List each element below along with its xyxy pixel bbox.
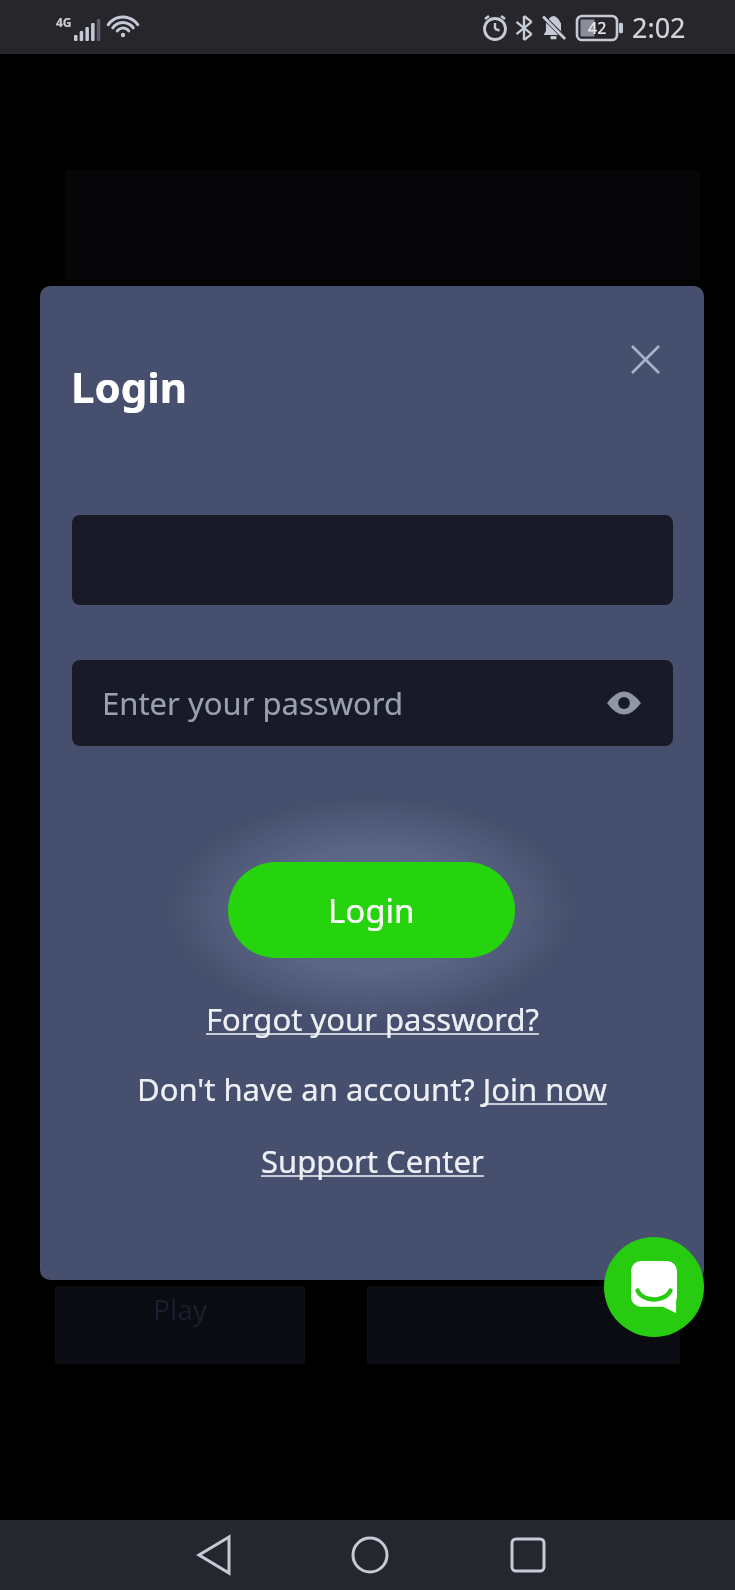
button[interactable] <box>184 1525 244 1585</box>
button[interactable] <box>498 1525 558 1585</box>
button[interactable]: Forgot your password? <box>206 998 539 1040</box>
button[interactable] <box>604 1237 704 1337</box>
staticText: Login <box>71 358 188 415</box>
staticText: Enter your password <box>102 682 404 724</box>
staticText: Login <box>328 888 415 933</box>
button[interactable] <box>340 1525 400 1585</box>
button[interactable]: Don't have an account? Join now <box>137 1068 607 1110</box>
staticText: 2:02 <box>632 9 686 46</box>
button[interactable]: Login <box>228 862 515 958</box>
staticText: Support Center <box>261 1140 484 1182</box>
button[interactable] <box>625 339 665 379</box>
staticText: 4G <box>56 14 72 30</box>
staticText: Play <box>153 1290 208 1328</box>
button[interactable]: Support Center <box>261 1140 484 1182</box>
staticText: 42 <box>588 17 607 39</box>
staticText: Forgot your password? <box>206 998 539 1040</box>
button[interactable]: Enter your password <box>72 660 673 746</box>
staticText: Don't have an account? Join now <box>137 1068 607 1110</box>
